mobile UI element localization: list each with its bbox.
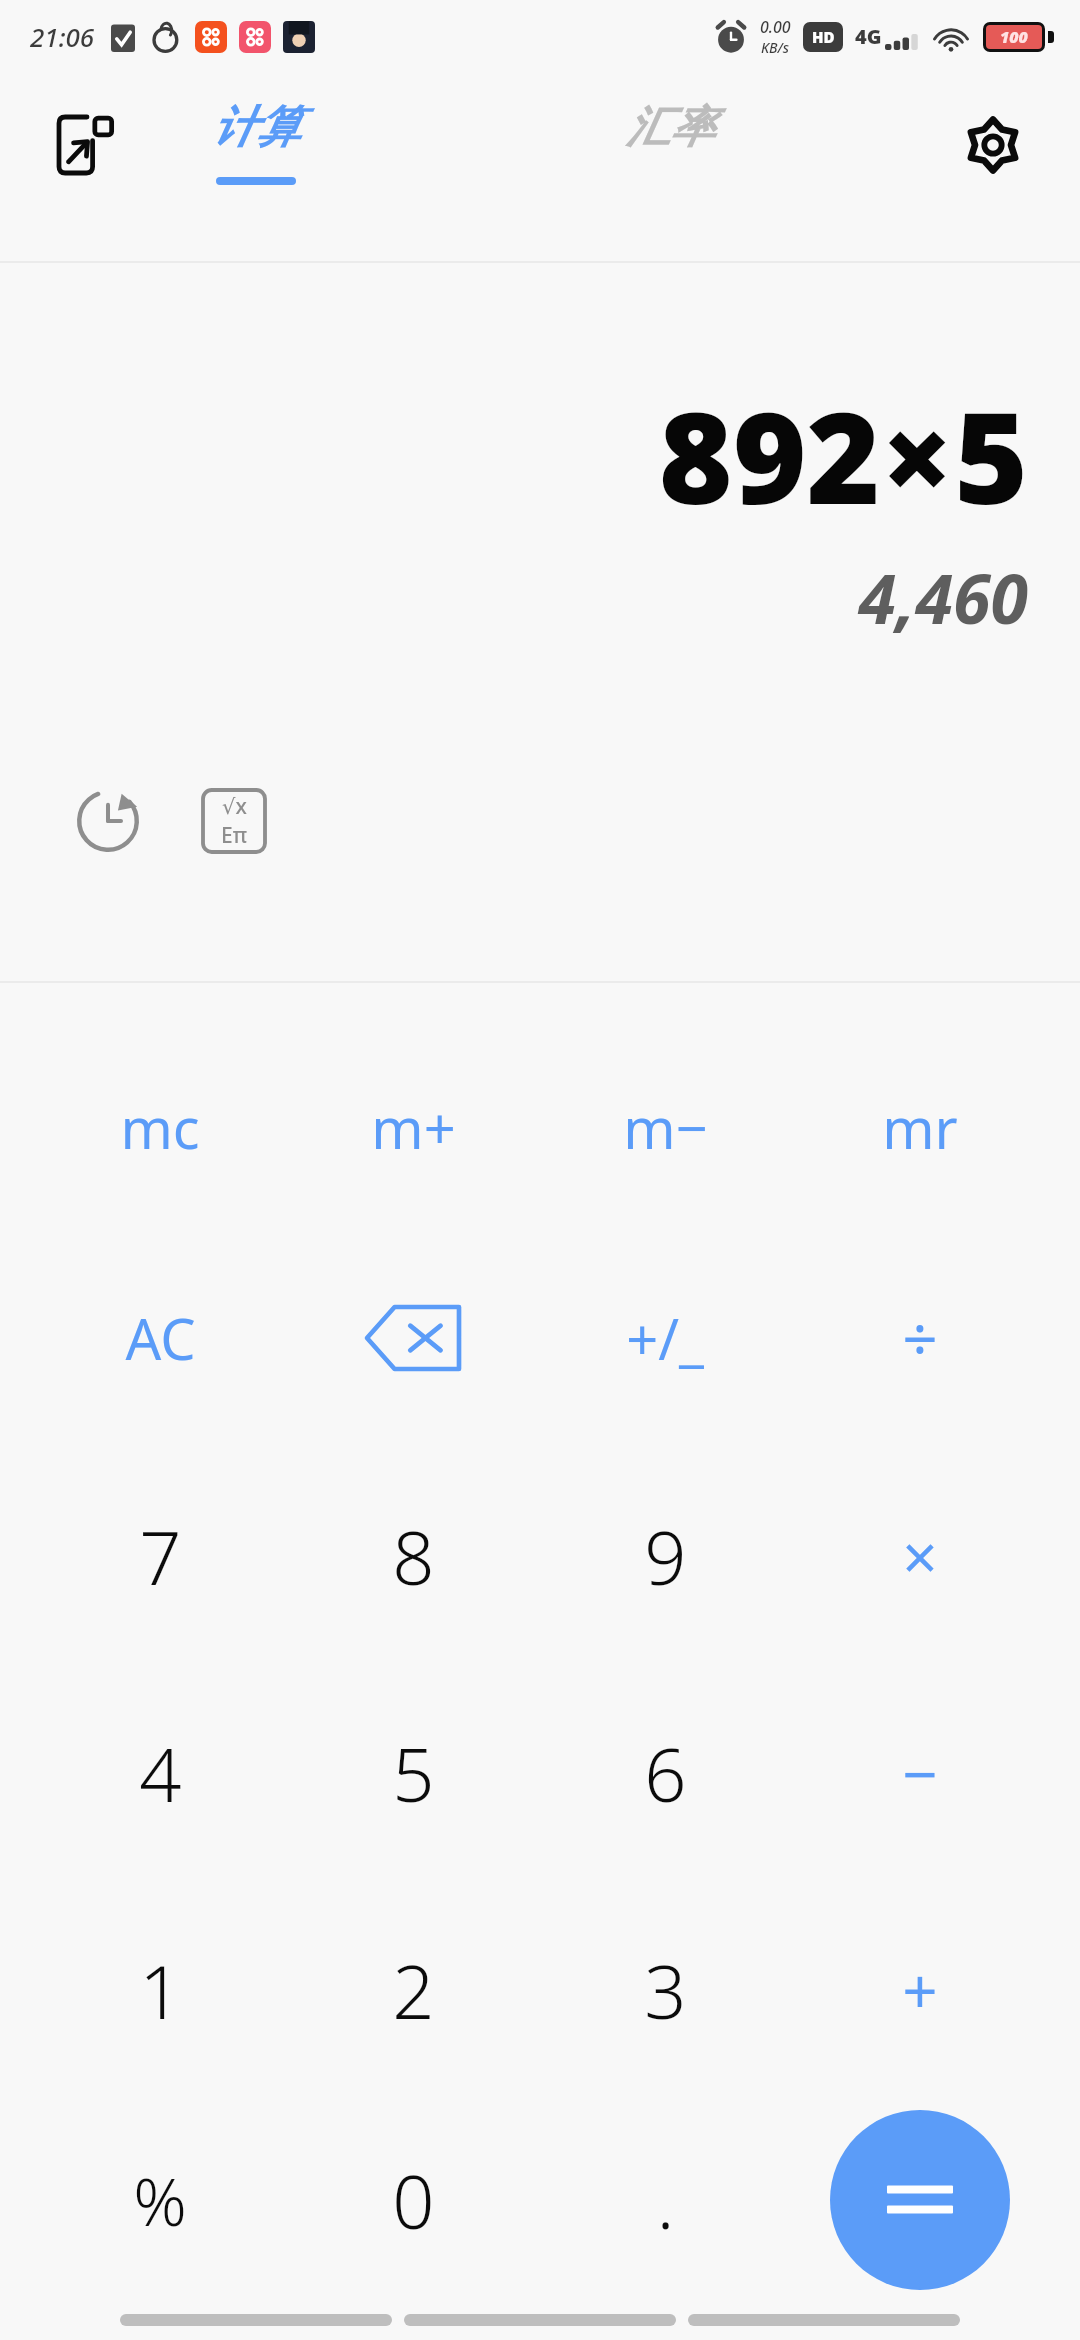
staticText: 7 [139, 1506, 182, 1607]
staticText: 5 [392, 1723, 435, 1824]
staticText: 0 [392, 2150, 435, 2251]
button[interactable]: . [560, 2095, 770, 2305]
staticText: 4 [139, 1723, 182, 1824]
staticText: ÷ [902, 1296, 938, 1380]
staticText: × [902, 1514, 938, 1598]
staticText: m+ [371, 1089, 456, 1165]
button[interactable]: 9 [560, 1451, 770, 1661]
staticText: 21:06 [30, 19, 95, 54]
staticText: HD [812, 27, 835, 47]
staticText: . [656, 2150, 675, 2251]
button[interactable]: 汇率 [600, 96, 740, 189]
button[interactable]: 7 [55, 1451, 265, 1661]
button[interactable]: +/_ [560, 1233, 770, 1443]
button[interactable]: Navigation 1 [404, 2314, 676, 2326]
button[interactable]: mc [55, 1022, 265, 1232]
button[interactable]: Scientific calculator [192, 779, 276, 863]
button[interactable]: 3 [560, 1885, 770, 2095]
staticText: mc [120, 1089, 200, 1165]
staticText: 2 [392, 1940, 435, 2041]
button[interactable]: × [815, 1451, 1025, 1661]
button[interactable]: History [66, 779, 150, 863]
button[interactable]: Settings [948, 100, 1038, 190]
button[interactable]: 计算 [186, 96, 326, 189]
button[interactable]: Navigation 2 [688, 2314, 960, 2326]
staticText: 计算 [212, 100, 300, 155]
staticText: 0.00 [760, 16, 791, 38]
staticText: 4,460 [858, 551, 1028, 644]
button[interactable]: m− [560, 1022, 770, 1232]
button[interactable]: Backspace [308, 1233, 518, 1443]
button[interactable]: 8 [308, 1451, 518, 1661]
staticText: 3 [644, 1940, 687, 2041]
button[interactable]: Mini window [42, 100, 132, 190]
staticText: 8 [392, 1506, 435, 1607]
button[interactable]: Equals [830, 2110, 1010, 2290]
button[interactable]: 1 [55, 1885, 265, 2095]
button[interactable]: 6 [560, 1668, 770, 1878]
button[interactable]: − [815, 1668, 1025, 1878]
staticText: 100 [1000, 26, 1028, 48]
button[interactable]: ÷ [815, 1233, 1025, 1443]
staticText: + [902, 1948, 938, 2032]
button[interactable]: 4 [55, 1668, 265, 1878]
staticText: 6 [644, 1723, 687, 1824]
staticText: − [902, 1731, 938, 1815]
staticText: 4G [855, 23, 882, 50]
staticText: AC [125, 1300, 196, 1376]
button[interactable]: mr [815, 1022, 1025, 1232]
button[interactable]: AC [55, 1233, 265, 1443]
button[interactable]: m+ [308, 1022, 518, 1232]
staticText: 汇率 [626, 100, 714, 155]
staticText: 892×5 [658, 369, 1028, 541]
button[interactable]: Navigation 0 [120, 2314, 392, 2326]
button[interactable]: 2 [308, 1885, 518, 2095]
staticText: % [133, 2155, 187, 2245]
button[interactable]: % [55, 2095, 265, 2305]
staticText: 1 [139, 1940, 182, 2041]
staticText: KB/s [761, 38, 790, 57]
staticText: Eπ [221, 821, 247, 850]
staticText: mr [882, 1089, 958, 1165]
staticText: m− [623, 1089, 708, 1165]
staticText: 9 [644, 1506, 687, 1607]
button[interactable]: 0 [308, 2095, 518, 2305]
staticText: +/_ [626, 1300, 704, 1376]
button[interactable]: 5 [308, 1668, 518, 1878]
button[interactable]: + [815, 1885, 1025, 2095]
staticText: √x [222, 792, 247, 821]
